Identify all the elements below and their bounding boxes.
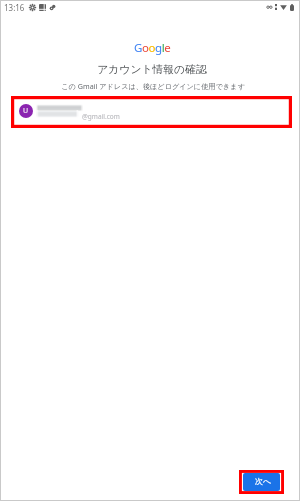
staticText: 13:16 xyxy=(4,2,25,13)
staticText: U xyxy=(23,106,29,116)
staticText: アカウント情報の確認 xyxy=(3,63,300,77)
button[interactable]: U xyxy=(19,95,292,127)
button[interactable]: 次へ xyxy=(243,473,280,491)
staticText: 次へ xyxy=(255,476,272,486)
staticText: Google xyxy=(134,40,171,56)
staticText: この Gmail アドレスは、後ほどログインに使用できます xyxy=(4,81,300,91)
staticText: @gmail.com xyxy=(82,112,120,121)
